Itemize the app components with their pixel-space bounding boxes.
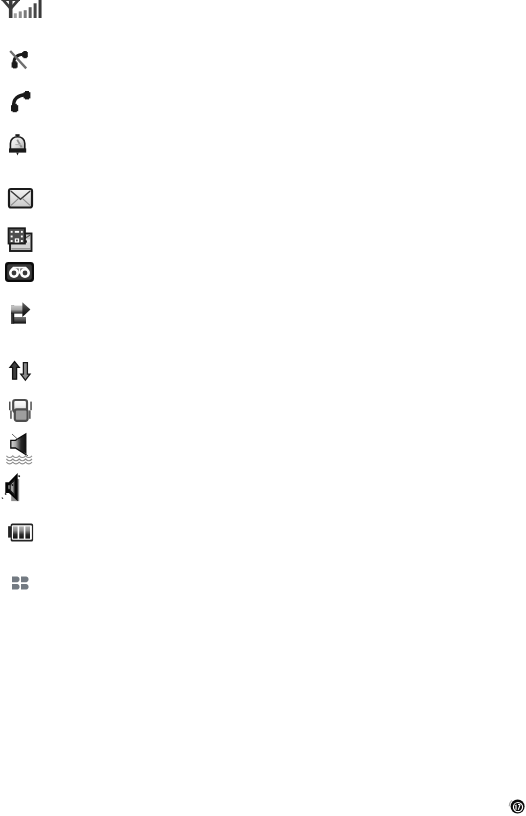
button[interactable]: Battery level <box>6 521 36 545</box>
button[interactable]: Alarm <box>7 132 33 158</box>
button[interactable]: Call divert <box>8 300 34 326</box>
button[interactable]: Multimedia message <box>7 226 35 252</box>
button[interactable]: Silent <box>4 474 30 502</box>
button[interactable]: Signal strength <box>0 0 44 22</box>
button[interactable]: Vibrate <box>6 398 34 422</box>
button[interactable]: Data transfer <box>8 359 32 383</box>
button[interactable]: Text message <box>7 187 35 211</box>
button[interactable]: Page 17 <box>509 798 526 815</box>
button[interactable]: Voicemail <box>4 260 36 284</box>
button[interactable]: Missed call <box>8 50 34 74</box>
button[interactable]: Call in progress <box>8 91 34 115</box>
button[interactable]: Ringer volume <box>6 431 34 465</box>
button[interactable]: Menu <box>10 574 32 592</box>
